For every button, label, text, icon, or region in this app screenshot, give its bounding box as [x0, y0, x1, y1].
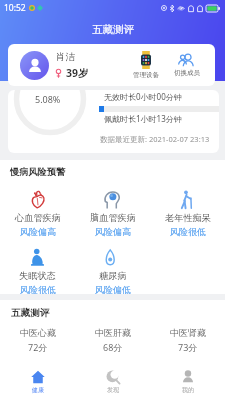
button[interactable]: 肖洁 — [8, 44, 215, 86]
staticText: 五藏测评 — [11, 307, 49, 319]
staticText: 68分 — [103, 341, 123, 353]
staticText: 风险偏高 — [95, 226, 131, 237]
staticText: 健康 — [32, 386, 44, 394]
button[interactable]: 5.08% — [8, 90, 219, 153]
button[interactable]: 切换成员 — [166, 44, 207, 86]
button[interactable]: 发现 — [75, 363, 150, 400]
staticText: 管理设备 — [133, 71, 159, 79]
button[interactable]: 糖尿病 — [75, 248, 150, 294]
staticText: 中医肝藏 — [95, 327, 131, 338]
staticText: 糖尿病 — [99, 270, 127, 282]
staticText: 佩戴时长1小时13分钟 — [104, 113, 182, 124]
button[interactable]: 中医肾藏 — [150, 327, 225, 353]
button[interactable]: 老年性痴呆 — [150, 190, 225, 237]
staticText: 肖洁 — [56, 51, 75, 63]
staticText: 发现 — [107, 386, 119, 394]
staticText: 72分 — [28, 341, 48, 353]
button[interactable]: 失眠状态 — [0, 248, 75, 294]
staticText: 73分 — [178, 341, 198, 353]
staticText: 切换成员 — [174, 69, 200, 77]
staticText: 慢病风险预警 — [10, 166, 66, 178]
staticText: 我的 — [182, 386, 194, 394]
button[interactable]: 健康 — [0, 363, 75, 400]
staticText: 风险很低 — [20, 284, 56, 294]
button[interactable]: 中医肝藏 — [75, 327, 150, 353]
button[interactable]: 脑血管疾病 — [75, 190, 150, 237]
staticText: 中医心藏 — [20, 327, 56, 338]
staticText: 脑血管疾病 — [90, 212, 136, 224]
staticText: 39岁 — [66, 66, 89, 80]
staticText: 五藏测评 — [92, 23, 134, 36]
staticText: 老年性痴呆 — [165, 212, 211, 224]
staticText: 5.08% — [35, 93, 61, 105]
staticText: 心血管疾病 — [15, 212, 61, 224]
staticText: 中医肾藏 — [170, 327, 206, 338]
button[interactable]: 心血管疾病 — [0, 190, 75, 237]
button[interactable]: 中医心藏 — [0, 327, 75, 353]
staticText: 风险偏低 — [95, 284, 131, 294]
staticText: 10:52 — [4, 2, 26, 14]
staticText: 风险偏高 — [20, 226, 56, 237]
staticText: 数据最近更新: 2021-02-07 23:13 — [100, 134, 210, 144]
staticText: 无效时长0小时00分钟 — [104, 91, 182, 102]
staticText: 风险很低 — [170, 226, 206, 237]
button[interactable]: 管理设备 — [125, 44, 166, 86]
staticText: 失眠状态 — [19, 270, 56, 282]
button[interactable]: 我的 — [150, 363, 225, 400]
